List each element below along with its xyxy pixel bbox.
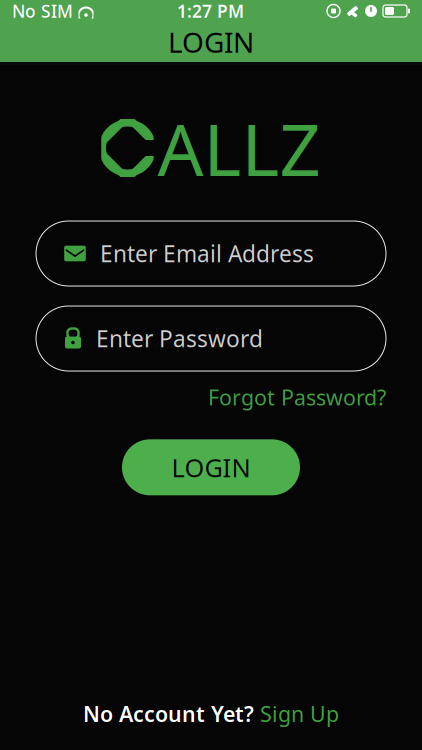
staticText: No SIM xyxy=(12,0,73,22)
staticText: 1:27 PM xyxy=(177,0,244,22)
staticText: Sign Up xyxy=(260,700,339,728)
staticText: Forgot Password? xyxy=(208,383,386,411)
button[interactable]: No Account Yet? xyxy=(71,692,351,736)
staticText: Enter Email Address xyxy=(100,238,314,268)
staticText: ALLZ xyxy=(157,100,320,196)
staticText: LOGIN xyxy=(168,23,254,61)
staticText: LOGIN xyxy=(171,450,250,484)
staticText: Enter Password xyxy=(96,323,263,353)
button[interactable]: LOGIN xyxy=(122,439,300,495)
button[interactable]: Forgot Password? xyxy=(204,377,390,417)
staticText: No Account Yet? xyxy=(83,700,254,728)
